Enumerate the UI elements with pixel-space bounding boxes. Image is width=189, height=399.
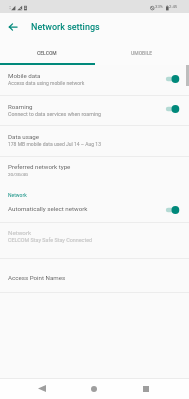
staticText: Access Point Names xyxy=(8,274,66,281)
staticText: Network settings xyxy=(31,22,100,33)
button[interactable] xyxy=(0,201,189,221)
button[interactable] xyxy=(0,155,189,187)
button[interactable]: Back xyxy=(32,378,52,399)
staticText: CELCOM xyxy=(37,50,57,56)
staticText: Connect to data services when roaming xyxy=(8,111,102,117)
button[interactable]: CELCOM xyxy=(0,41,94,65)
staticText: UMOBILE xyxy=(131,50,153,56)
button[interactable]: Automatically select network toggle xyxy=(160,202,184,218)
staticText: Network xyxy=(8,229,32,236)
staticText: Access data using mobile network xyxy=(8,80,85,86)
button[interactable] xyxy=(0,95,189,125)
button[interactable]: Roaming toggle xyxy=(160,101,184,117)
staticText: 2:45 xyxy=(169,4,178,9)
button[interactable] xyxy=(0,221,189,258)
staticText: 2G/3G/4G xyxy=(8,172,28,177)
button[interactable]: Home xyxy=(84,378,104,399)
button[interactable]: UMOBILE xyxy=(94,41,189,65)
button[interactable]: Recent apps xyxy=(136,378,156,399)
staticText: Mobile data xyxy=(8,72,41,79)
button[interactable]: Mobile data toggle xyxy=(160,71,184,87)
button[interactable]: Back xyxy=(2,18,24,36)
staticText: Network xyxy=(8,192,27,198)
staticText: 33% xyxy=(155,4,163,9)
staticText: Automatically select network xyxy=(8,205,88,212)
staticText: Data usage xyxy=(8,133,40,140)
staticText: 178 MB mobile data used Jul 14 – Aug 13 xyxy=(8,141,101,147)
staticText: CELCOM Stay Safe Stay Connected xyxy=(8,237,93,243)
staticText: Roaming xyxy=(8,103,33,110)
staticText: Preferred network type xyxy=(8,163,71,170)
button[interactable] xyxy=(0,64,189,95)
button[interactable] xyxy=(0,258,189,292)
button[interactable] xyxy=(0,125,189,155)
